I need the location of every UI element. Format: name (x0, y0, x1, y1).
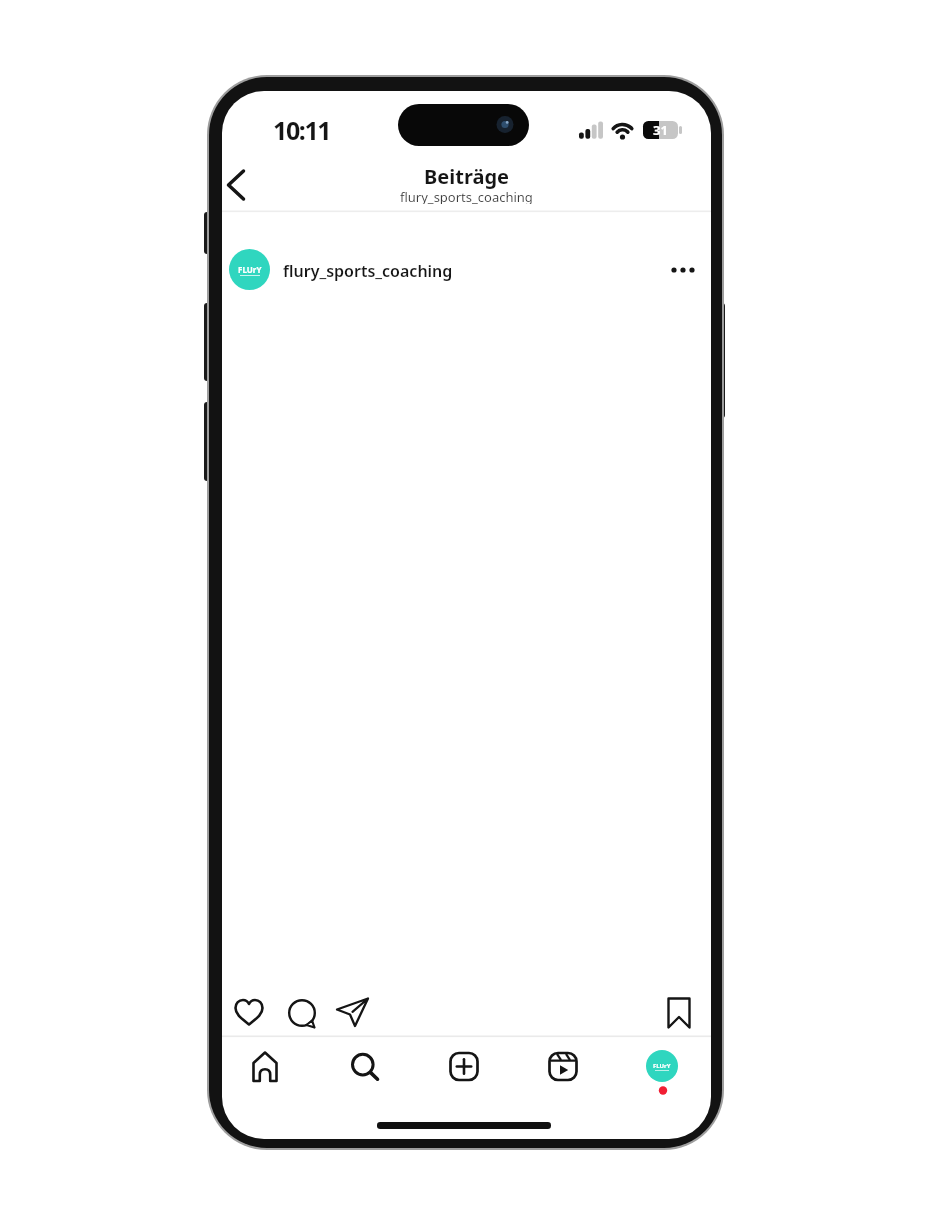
staticText: 31 (653, 121, 668, 139)
button[interactable] (286, 997, 320, 1029)
button[interactable]: flury_sports_coaching (283, 260, 453, 282)
button[interactable]: FLUrY (229, 249, 270, 290)
button[interactable] (334, 997, 372, 1029)
button[interactable] (345, 1047, 385, 1087)
button[interactable] (543, 1047, 583, 1087)
button[interactable] (663, 997, 695, 1029)
button[interactable] (245, 1047, 285, 1087)
button[interactable]: FLUrY (646, 1050, 678, 1082)
button[interactable] (444, 1047, 484, 1087)
button[interactable] (232, 997, 266, 1029)
button[interactable] (222, 165, 262, 205)
staticText: FLUrY (238, 264, 262, 275)
button[interactable] (666, 254, 700, 286)
staticText: FLUrY (653, 1062, 671, 1070)
staticText: Beiträge (424, 163, 509, 190)
staticText: 10:11 (273, 113, 331, 147)
staticText: flury_sports_coaching (400, 188, 533, 204)
